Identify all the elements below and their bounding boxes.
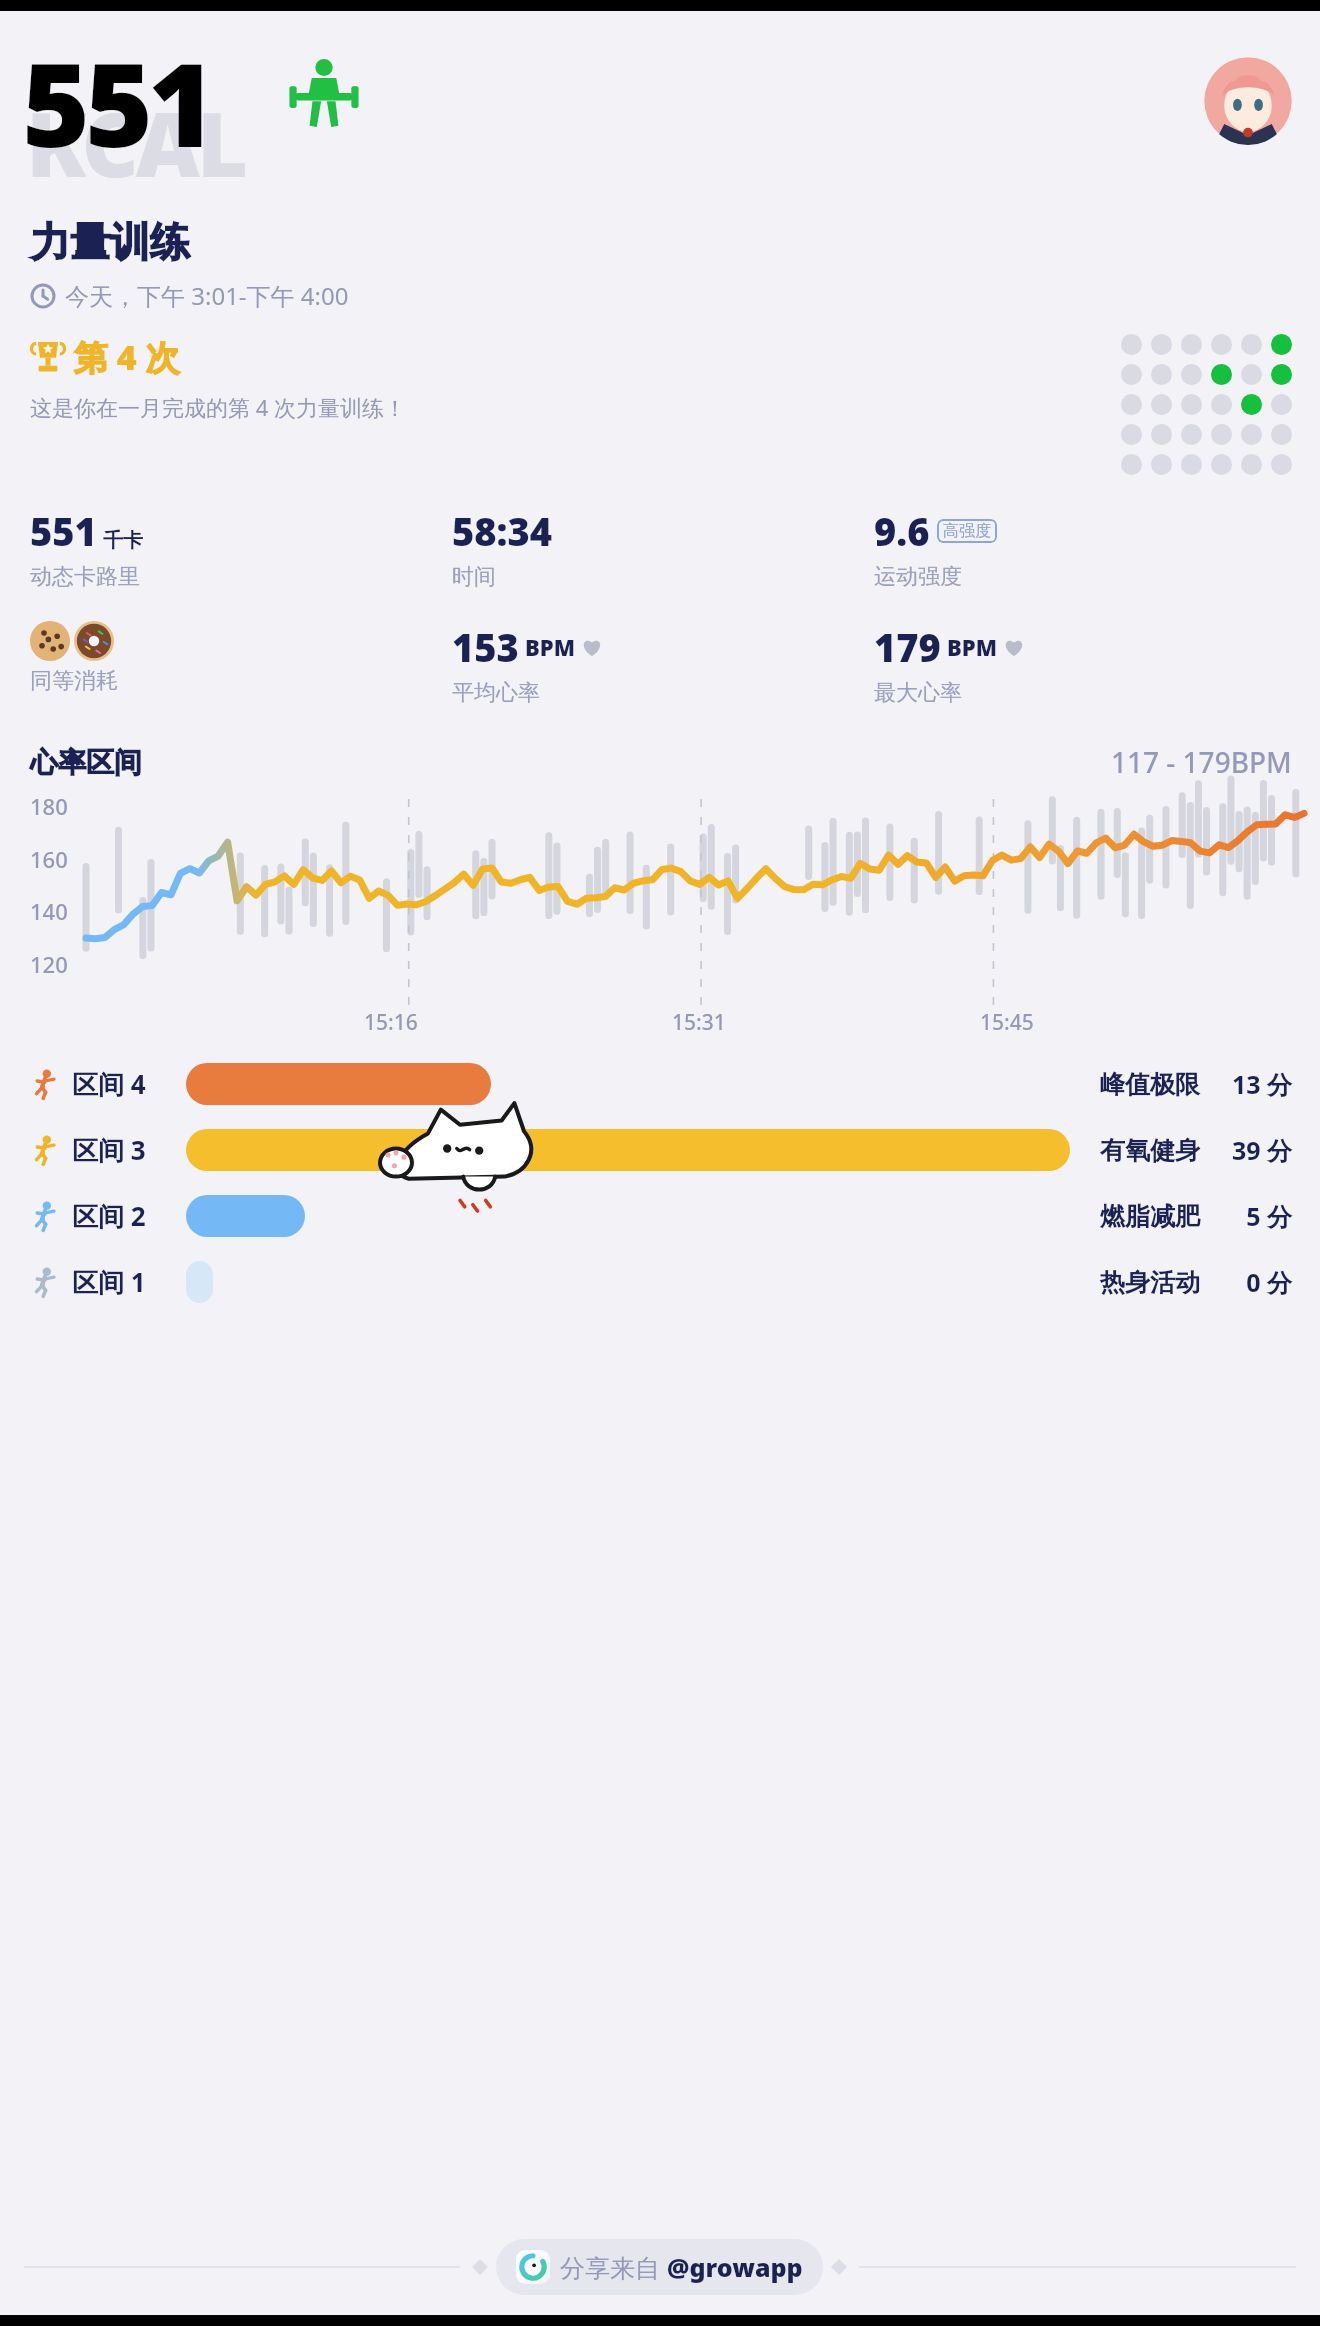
staticText: 热身活动 — [1070, 1267, 1200, 1298]
staticText: KCAL — [26, 83, 245, 203]
staticText: 燃脂减肥 — [1070, 1201, 1200, 1232]
staticText: 运动强度 — [874, 563, 962, 591]
staticText: 这是你在一月完成的第 4 次力量训练！ — [30, 392, 407, 422]
staticText: 15:45 — [980, 1008, 1034, 1037]
button[interactable]: 58:34 — [452, 505, 874, 591]
staticText: 0 分 — [1222, 1265, 1292, 1299]
button[interactable]: 区间 1 — [30, 1249, 1292, 1315]
button[interactable]: 区间 3 — [30, 1117, 1292, 1183]
staticText: 39 分 — [1222, 1133, 1292, 1167]
staticText: 最大心率 — [874, 679, 962, 707]
button[interactable]: 区间 2 — [30, 1183, 1292, 1249]
staticText: 551 — [30, 505, 97, 557]
staticText: 180 — [30, 791, 68, 821]
button[interactable]: 同等消耗 — [30, 621, 452, 695]
staticText: 高强度 — [943, 521, 991, 541]
staticText: 区间 4 — [72, 1066, 180, 1102]
button[interactable]: 551 — [30, 505, 452, 591]
staticText: 分享来自 — [560, 2250, 667, 2284]
staticText: 160 — [30, 844, 68, 874]
button[interactable]: 153 — [452, 621, 874, 707]
button[interactable]: 9.6 — [874, 505, 1296, 591]
staticText: 15:31 — [672, 1008, 726, 1037]
staticText: 区间 1 — [72, 1264, 180, 1300]
staticText: BPM — [525, 632, 576, 662]
staticText: 力量训练 — [30, 217, 190, 267]
staticText: 58:34 — [452, 505, 553, 557]
staticText: 117 - 179BPM — [1111, 743, 1292, 781]
button[interactable]: 区间 4 — [30, 1051, 1292, 1117]
staticText: 13 分 — [1222, 1067, 1292, 1101]
staticText: 551 — [22, 23, 211, 181]
staticText: 179 — [874, 621, 941, 673]
staticText: 动态卡路里 — [30, 563, 140, 591]
other: Strength training — [288, 59, 360, 127]
staticText: 有氧健身 — [1070, 1135, 1200, 1166]
staticText: 同等消耗 — [30, 667, 118, 695]
staticText: 今天，下午 3:01-下午 4:00 — [65, 279, 349, 312]
staticText: @growapp — [667, 2250, 803, 2284]
staticText: 第 4 次 — [74, 334, 180, 380]
button[interactable]: 分享来自 — [496, 2239, 823, 2295]
staticText: 平均心率 — [452, 679, 540, 707]
staticText: 9.6 — [874, 505, 930, 557]
staticText: 区间 3 — [72, 1132, 180, 1168]
staticText: 120 — [30, 949, 68, 979]
staticText: 153 — [452, 621, 519, 673]
staticText: BPM — [947, 632, 998, 662]
button[interactable]: 179 — [874, 621, 1296, 707]
staticText: 峰值极限 — [1070, 1069, 1200, 1100]
button[interactable]: Profile — [1204, 57, 1292, 145]
staticText: 时间 — [452, 563, 496, 591]
staticText: 千卡 — [103, 528, 143, 553]
staticText: 15:16 — [364, 1008, 418, 1037]
staticText: 5 分 — [1222, 1199, 1292, 1233]
staticText: 区间 2 — [72, 1198, 180, 1234]
staticText: 140 — [30, 896, 68, 926]
staticText: 心率区间 — [30, 745, 142, 780]
